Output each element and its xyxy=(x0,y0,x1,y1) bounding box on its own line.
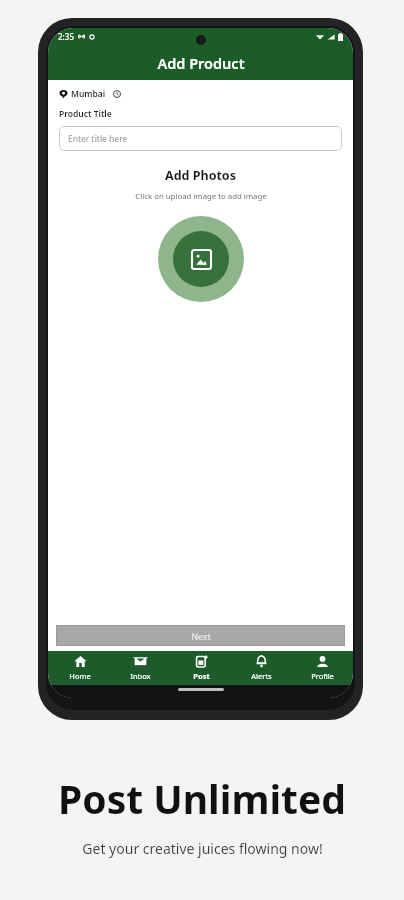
staticText: Inbox xyxy=(130,671,151,681)
staticText: Product Title xyxy=(59,108,112,120)
staticText: Post Unlimited xyxy=(58,772,346,825)
staticText: Enter title here xyxy=(68,133,128,145)
staticText: Post xyxy=(193,671,210,681)
staticText: Click on upload image to add image xyxy=(135,191,267,202)
button[interactable]: Mumbai xyxy=(59,88,353,100)
staticText: Mumbai xyxy=(71,88,106,100)
button[interactable]: Profile xyxy=(293,651,351,685)
staticText: 2:35 xyxy=(58,31,74,42)
staticText: Home xyxy=(69,671,91,681)
other: Info xyxy=(113,90,121,98)
button[interactable]: Post xyxy=(172,651,230,685)
button[interactable]: Upload image xyxy=(158,216,244,302)
staticText: Get your creative juices flowing now! xyxy=(82,839,323,858)
staticText: Add Product xyxy=(157,53,245,73)
staticText: Alerts xyxy=(251,671,272,681)
button[interactable]: Home xyxy=(51,651,109,685)
staticText: Add Photos xyxy=(165,167,236,184)
staticText: Profile xyxy=(311,671,334,681)
button[interactable]: Enter title here xyxy=(59,126,342,151)
button[interactable]: Next xyxy=(56,625,345,646)
button[interactable]: Inbox xyxy=(111,651,169,685)
button[interactable]: Alerts xyxy=(232,651,290,685)
staticText: Next xyxy=(191,630,211,642)
